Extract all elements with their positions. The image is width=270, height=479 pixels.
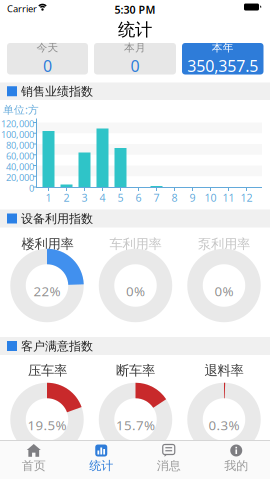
button[interactable]: 本月 <box>94 43 176 74</box>
button[interactable]: 本年 <box>182 43 263 74</box>
staticText: 压车率 <box>28 362 67 379</box>
staticText: 0 <box>29 182 34 194</box>
staticText: 客户满意指数 <box>21 339 93 354</box>
button[interactable]: 首页 <box>0 440 67 479</box>
button[interactable]: 今天 <box>7 43 88 74</box>
button[interactable]: 我的 <box>202 440 270 479</box>
staticText: 单位:方 <box>3 102 39 117</box>
staticText: 9 <box>189 190 195 205</box>
staticText: 80,000 <box>6 139 34 151</box>
staticText: 15.7% <box>116 416 155 434</box>
staticText: 19.5% <box>27 416 66 434</box>
staticText: 1 <box>45 190 51 205</box>
staticText: 销售业绩指数 <box>21 84 93 99</box>
staticText: 2 <box>63 190 69 205</box>
button[interactable]: 统计 <box>67 440 135 479</box>
staticText: 11 <box>222 190 234 205</box>
staticText: 0 <box>43 55 52 76</box>
staticText: 本年 <box>212 41 234 54</box>
staticText: 4 <box>99 190 105 205</box>
staticText: 退料率 <box>204 362 243 379</box>
staticText: 我的 <box>224 458 248 473</box>
staticText: 设备利用指数 <box>21 211 93 226</box>
staticText: 车利用率 <box>109 236 161 252</box>
button[interactable]: 消息 <box>135 440 202 479</box>
staticText: 消息 <box>157 458 181 473</box>
staticText: 0% <box>126 282 145 300</box>
staticText: 今天 <box>36 41 58 54</box>
staticText: 0% <box>214 282 233 300</box>
staticText: 断车率 <box>116 362 155 379</box>
staticText: 8 <box>171 190 177 205</box>
staticText: 20,000 <box>6 171 34 184</box>
staticText: 泵利用率 <box>198 236 250 252</box>
staticText: 0.3% <box>208 416 239 434</box>
staticText: 60,000 <box>6 150 34 162</box>
staticText: 楼利用率 <box>21 236 73 252</box>
staticText: 0 <box>130 55 139 76</box>
staticText: 5:30 PM <box>114 2 155 17</box>
staticText: 统计 <box>118 19 152 40</box>
staticText: 5 <box>117 190 123 205</box>
staticText: Carrier <box>7 2 37 15</box>
staticText: 3 <box>81 190 87 205</box>
staticText: 7 <box>153 190 159 205</box>
staticText: 10 <box>204 190 216 205</box>
staticText: 统计 <box>89 458 113 473</box>
staticText: 100,000 <box>1 128 34 141</box>
staticText: 首页 <box>22 458 46 473</box>
staticText: 40,000 <box>6 160 34 173</box>
staticText: 12 <box>240 190 252 205</box>
staticText: 6 <box>135 190 141 205</box>
staticText: 22% <box>33 282 60 300</box>
staticText: 本月 <box>124 41 146 54</box>
staticText: 350,357.5 <box>187 55 258 76</box>
staticText: 120,000 <box>1 117 34 130</box>
